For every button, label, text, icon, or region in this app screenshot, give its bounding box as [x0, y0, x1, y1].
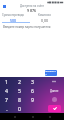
staticText: 5 [18, 87, 21, 94]
button[interactable]: . [0, 104, 13, 113]
button[interactable]: 8 [13, 95, 26, 104]
button[interactable]: ПЕРЕВЕСТИ [45, 70, 57, 76]
button[interactable]: Backspace [44, 77, 64, 86]
button[interactable]: 1 [0, 77, 13, 86]
staticText: Комиссия [38, 13, 51, 17]
staticText: 6 [31, 87, 34, 94]
button[interactable]: Back [12, 114, 17, 119]
button[interactable]: Home [30, 114, 35, 119]
button[interactable]: Clear [52, 97, 57, 102]
staticText: 9 [31, 96, 34, 103]
button[interactable]: Recents [47, 114, 52, 119]
button[interactable]: 9 [26, 95, 39, 104]
button[interactable]: 0 [13, 104, 26, 113]
staticText: 0 [18, 105, 21, 112]
button[interactable]: Confirm [48, 105, 61, 112]
staticText: 8 [18, 96, 21, 103]
button[interactable]: Далее [44, 86, 64, 95]
staticText: 500 [10, 18, 17, 23]
button[interactable]: 2 [13, 77, 26, 86]
button[interactable]: 3 [26, 77, 39, 86]
staticText: 9 876 [27, 8, 37, 13]
staticText: Далее [50, 89, 59, 93]
staticText: 0,00 [41, 18, 49, 23]
staticText: Введите номер карты получателя [3, 25, 51, 29]
button[interactable]: 5 [13, 86, 26, 95]
button[interactable]: 4 [0, 86, 13, 95]
staticText: ПЕРЕВЕСТИ [45, 70, 57, 76]
staticText: . [6, 105, 8, 112]
staticText: 1 [5, 78, 8, 85]
staticText: 7 [5, 96, 8, 103]
button[interactable] [26, 104, 39, 113]
staticText: Доступно на счёте [20, 4, 44, 8]
staticText: 4 [5, 87, 8, 94]
staticText: Сумма перевода [2, 13, 24, 17]
button[interactable]: 6 [26, 86, 39, 95]
staticText: 2 [18, 78, 21, 85]
staticText: 3 [31, 78, 34, 85]
button[interactable]: 7 [0, 95, 13, 104]
